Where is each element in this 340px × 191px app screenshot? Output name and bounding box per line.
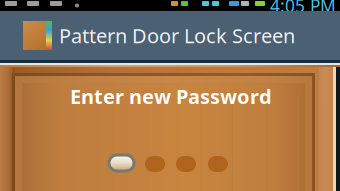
button[interactable]: Pattern dot 1, selected <box>109 155 134 171</box>
button[interactable]: Pattern dot 4 <box>208 156 228 172</box>
button[interactable]: Pattern dot 2 <box>145 156 165 172</box>
staticText: Enter new Password <box>70 83 272 110</box>
staticText: Pattern Door Lock Screen <box>59 22 295 49</box>
button[interactable]: Pattern dot 3 <box>176 156 196 172</box>
staticText: 4:05 PM <box>270 0 336 17</box>
